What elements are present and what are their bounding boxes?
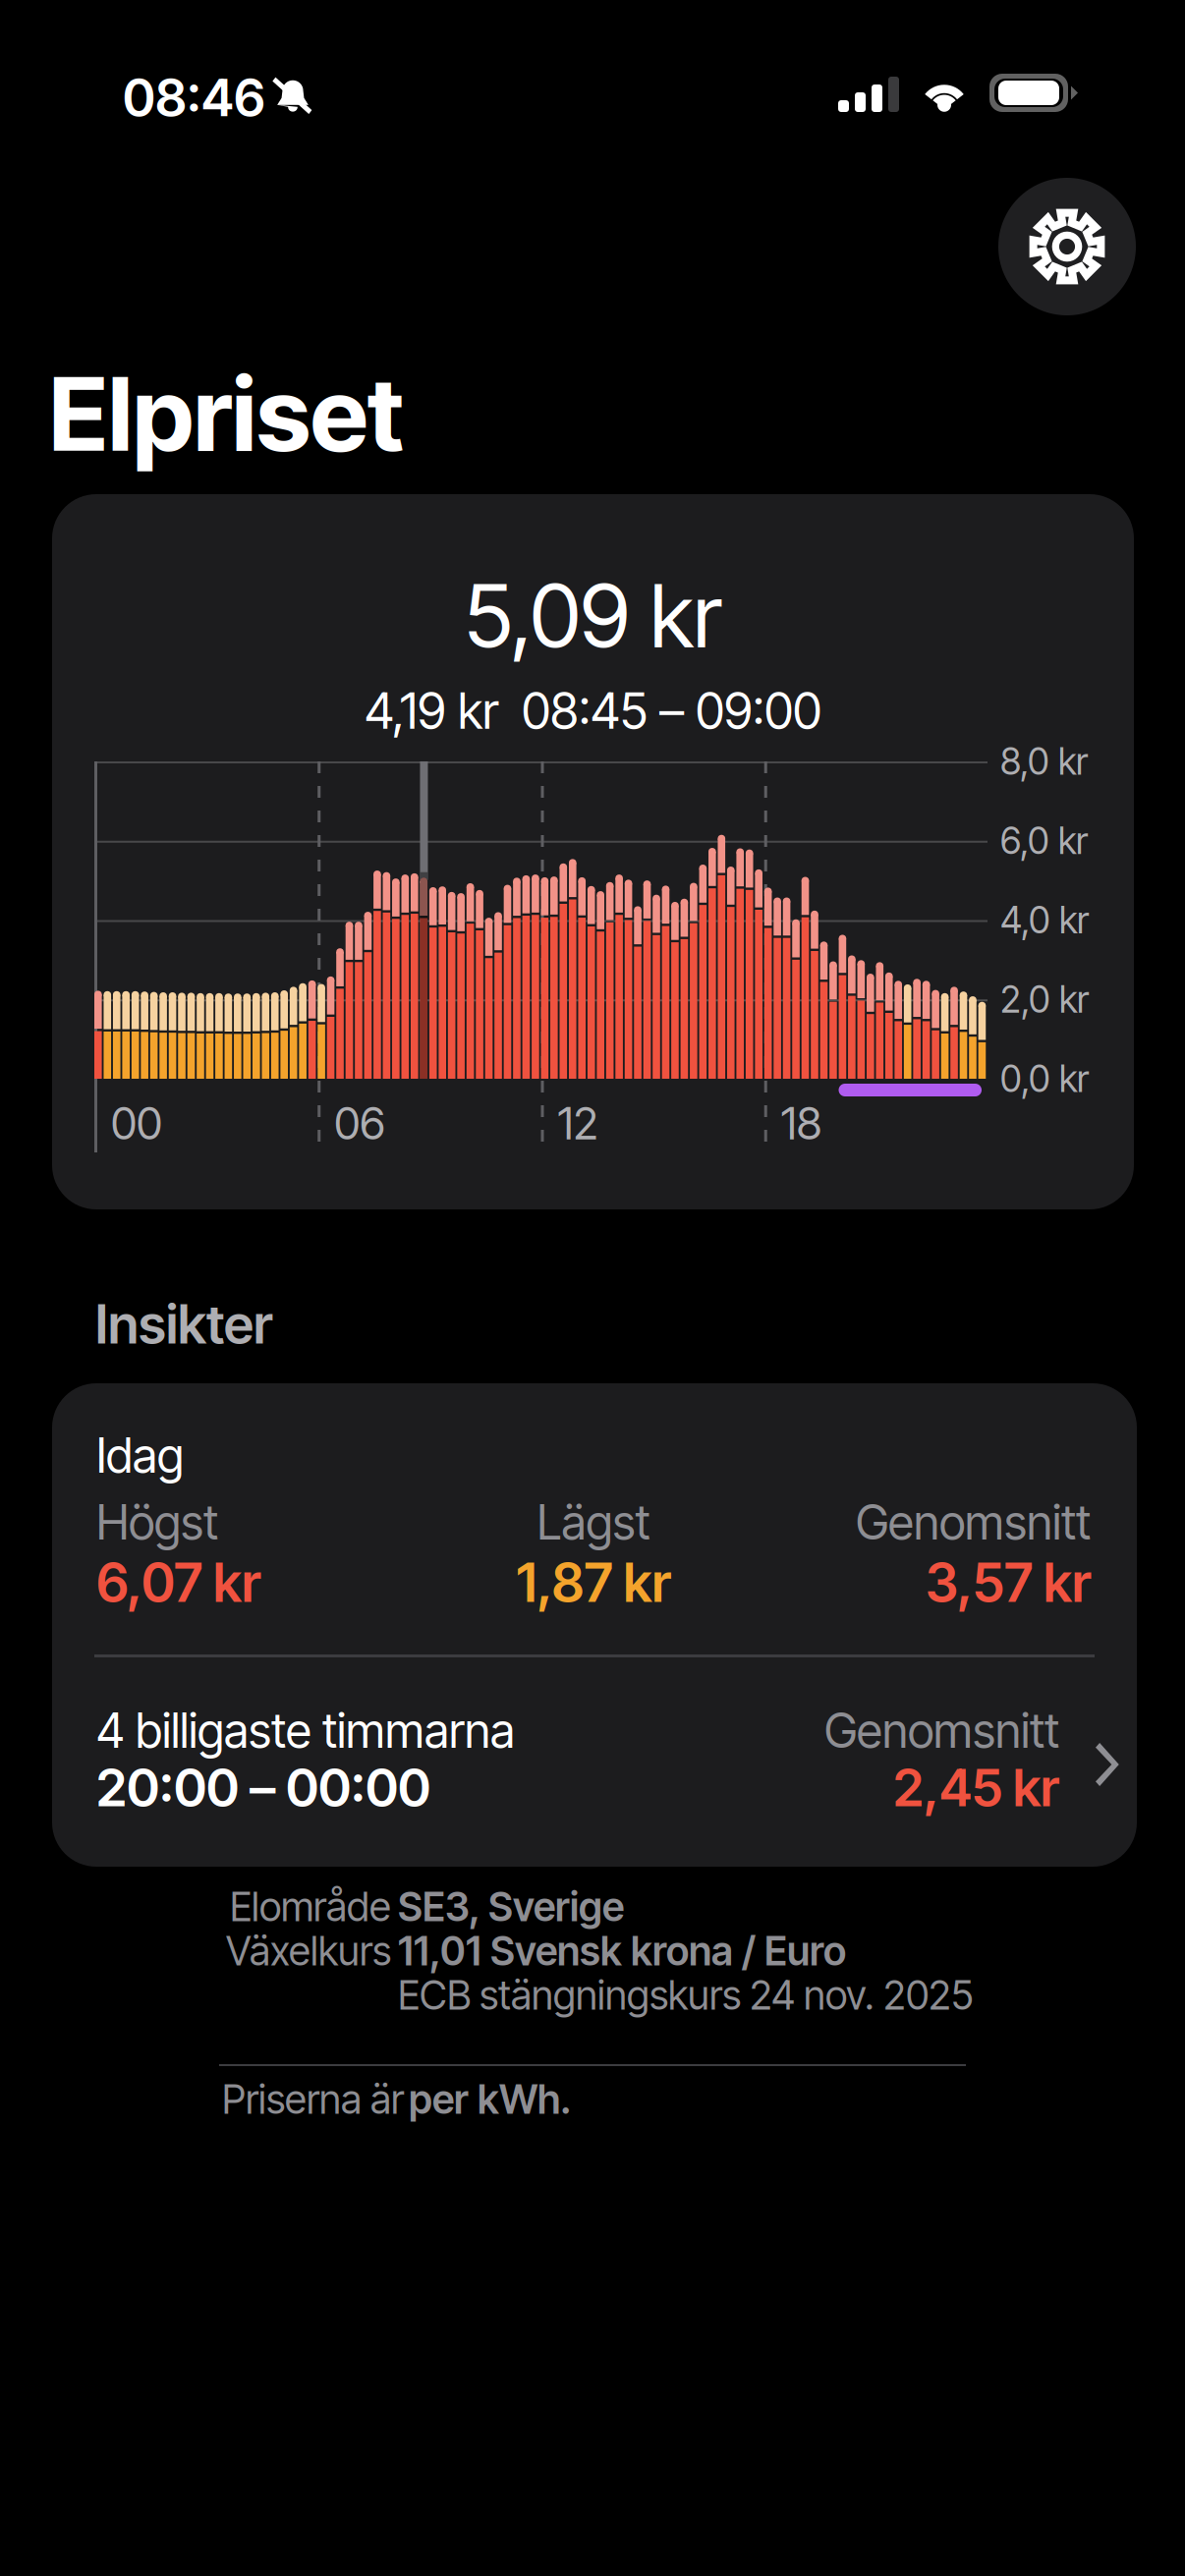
staticText: 06 xyxy=(334,1097,385,1150)
staticText: Genomsnitt xyxy=(856,1494,1091,1551)
staticText: 18 xyxy=(781,1097,821,1150)
staticText: 5,09 kr xyxy=(464,563,722,668)
staticText: 4,0 kr xyxy=(1000,898,1089,942)
staticText: 20:00 – 00:00 xyxy=(96,1756,430,1819)
staticText: 0,0 kr xyxy=(1000,1057,1089,1101)
staticText: 2,0 kr xyxy=(1000,977,1089,1021)
staticText: Högst xyxy=(96,1494,218,1551)
staticText: 12 xyxy=(558,1097,598,1150)
staticText: Lägst xyxy=(537,1494,650,1551)
staticText: Priserna är xyxy=(222,2075,404,2123)
staticText: 8,0 kr xyxy=(1000,739,1088,784)
staticText: Elområde xyxy=(230,1883,391,1931)
staticText: Genomsnitt xyxy=(824,1702,1059,1759)
staticText: Idag xyxy=(96,1427,184,1484)
staticText: 08:46 xyxy=(123,66,265,129)
staticText: 6,0 kr xyxy=(1000,819,1088,863)
staticText: Elpriset xyxy=(49,352,404,475)
staticText: 6,07 kr xyxy=(96,1551,260,1615)
staticText: 1,87 kr xyxy=(516,1551,671,1615)
staticText: 4 billigaste timmarna xyxy=(96,1702,515,1759)
staticText: 4,19 kr 08:45 – 09:00 xyxy=(365,681,821,741)
staticText: 3,57 kr xyxy=(926,1551,1091,1615)
button[interactable]: 4 billigaste timmarna xyxy=(52,1670,1137,1867)
staticText: per kWh. xyxy=(409,2075,571,2123)
staticText: Växelkurs xyxy=(226,1927,391,1975)
staticText: 2,45 kr xyxy=(893,1756,1059,1819)
staticText: 11,01 Svensk krona / Euro xyxy=(398,1927,846,1975)
staticText: Insikter xyxy=(95,1292,272,1356)
staticText: 00 xyxy=(111,1097,162,1150)
staticText: ECB stängningskurs 24 nov. 2025 xyxy=(398,1971,974,2019)
button[interactable]: Settings xyxy=(998,178,1136,315)
staticText: SE3, Sverige xyxy=(398,1883,624,1931)
